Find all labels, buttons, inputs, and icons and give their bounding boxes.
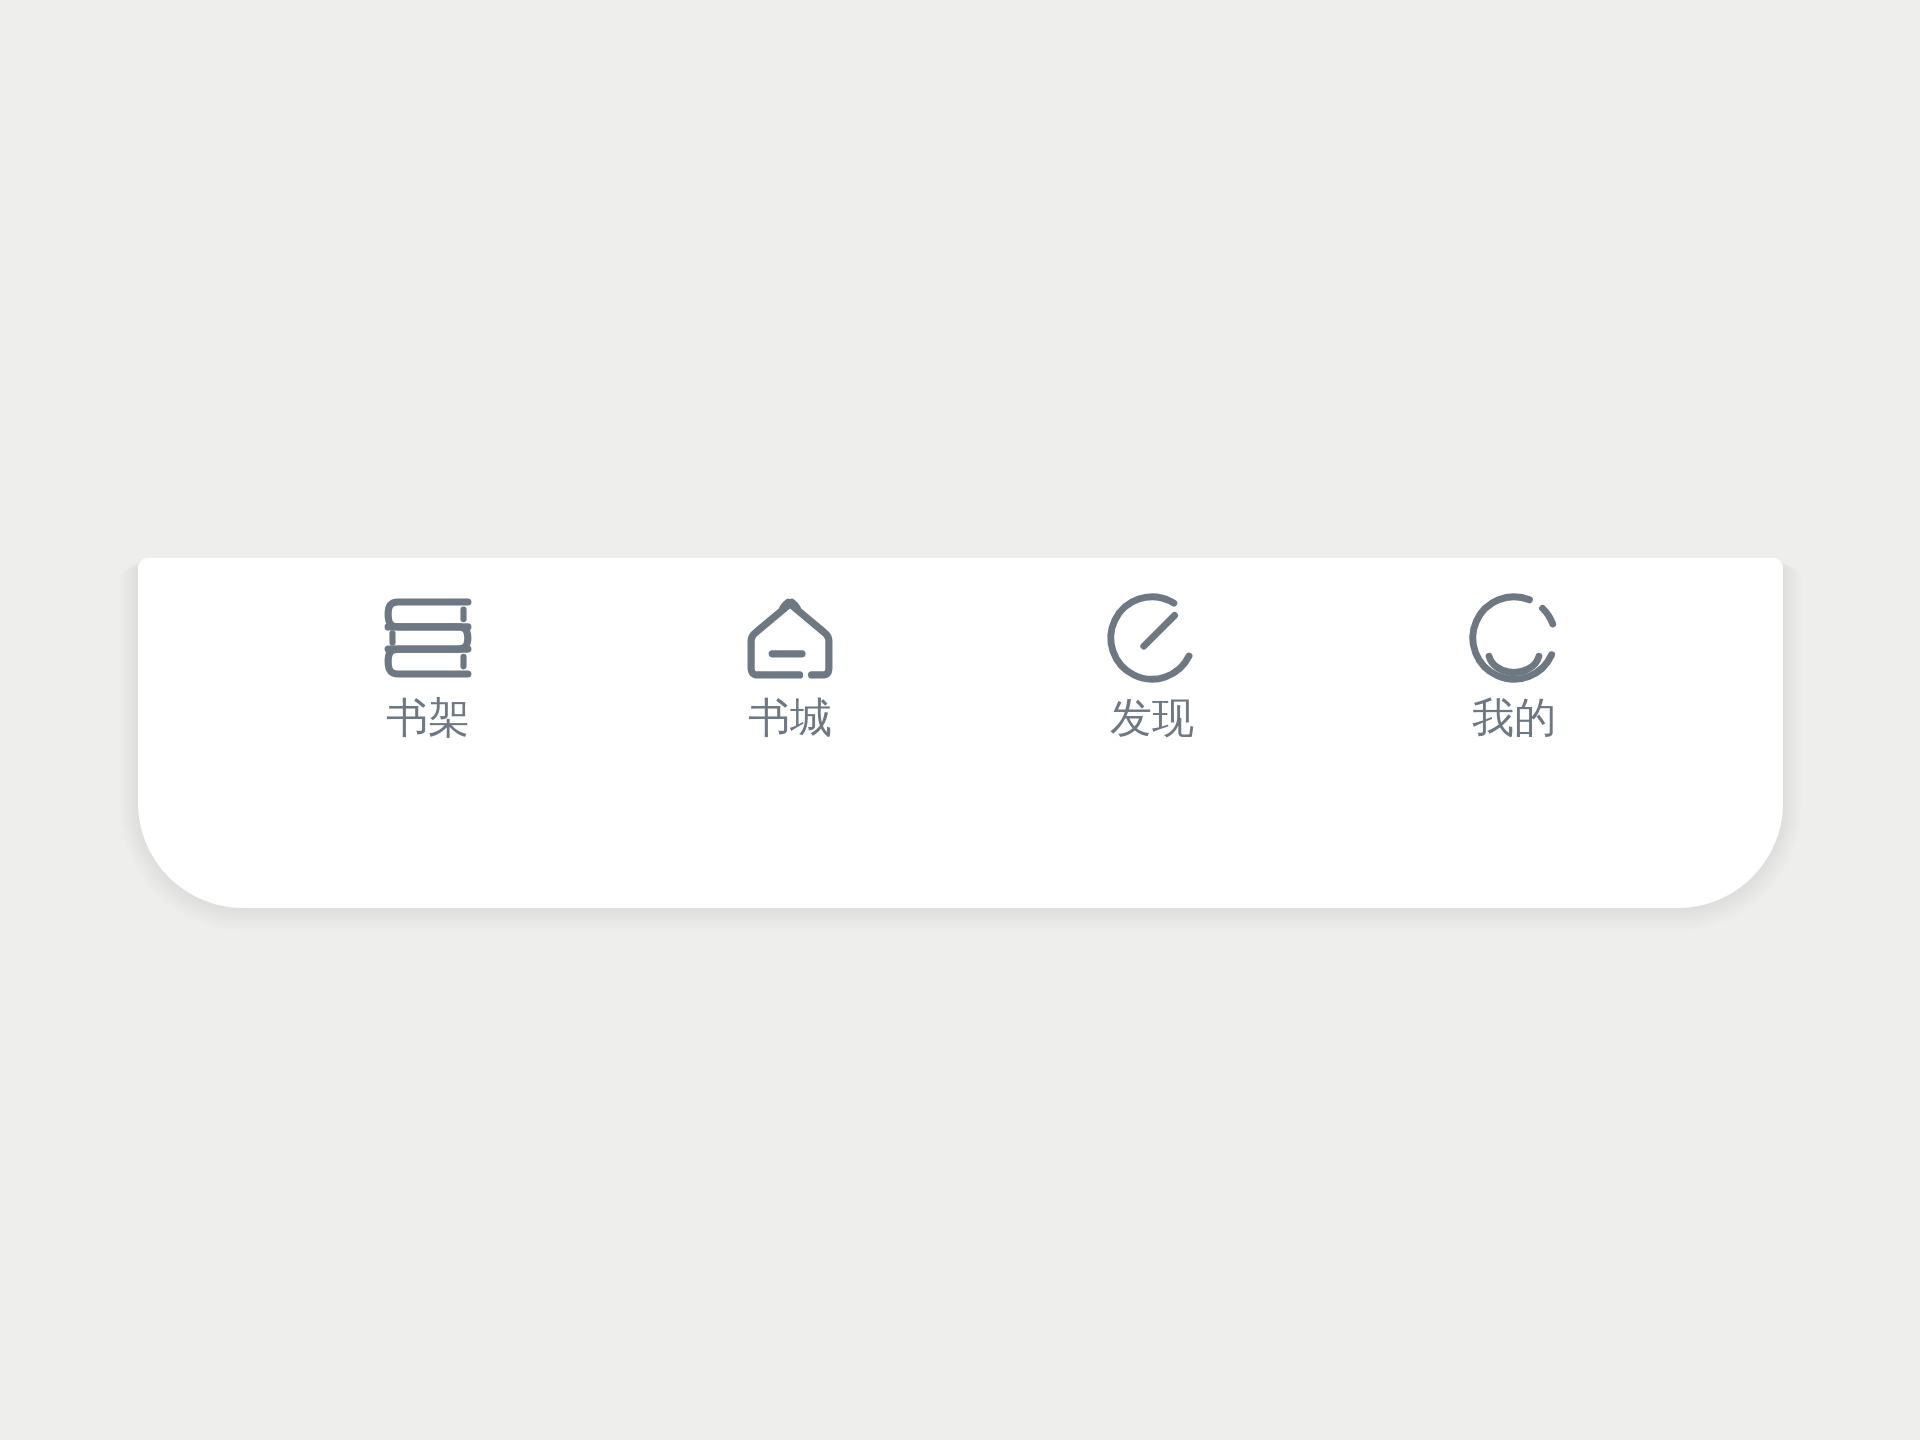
button[interactable]: 书城 <box>690 585 890 775</box>
staticText: 书架 <box>386 692 470 745</box>
button[interactable]: 书架 <box>328 585 528 775</box>
staticText: 书城 <box>748 692 832 745</box>
staticText: 发现 <box>1110 692 1194 745</box>
button[interactable]: 我的 <box>1414 585 1614 775</box>
button[interactable]: 发现 <box>1052 585 1252 775</box>
staticText: 我的 <box>1472 692 1556 745</box>
